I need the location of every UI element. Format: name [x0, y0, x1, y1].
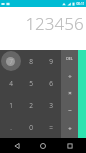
button[interactable]: 1 — [0, 94, 21, 116]
staticText: 1 — [9, 101, 13, 110]
button[interactable]: 2 — [21, 94, 41, 116]
button[interactable]: 6 — [41, 72, 61, 94]
staticText: 7 — [9, 57, 13, 66]
staticText: 8 — [29, 57, 33, 66]
button[interactable]: 0 — [21, 116, 41, 138]
staticText: − — [68, 107, 72, 115]
button[interactable]: 4 — [0, 72, 21, 94]
staticText: 2 — [29, 101, 33, 110]
staticText: + — [68, 125, 72, 133]
button[interactable]: DEL — [61, 50, 78, 67]
staticText: 00:11 — [76, 2, 85, 6]
staticText: . — [10, 123, 12, 132]
button[interactable]: 3 — [41, 94, 61, 116]
staticText: ÷ — [68, 72, 72, 80]
button[interactable]: = — [41, 116, 61, 138]
staticText: 6 — [49, 79, 53, 88]
staticText: × — [68, 89, 72, 97]
button[interactable]: 8 — [21, 50, 41, 72]
staticText: 123456 — [25, 12, 84, 35]
button[interactable]: Home — [33, 138, 53, 153]
button[interactable]: − — [61, 102, 78, 120]
staticText: 3 — [49, 101, 53, 110]
button[interactable]: × — [61, 84, 78, 102]
button[interactable]: ÷ — [61, 67, 78, 84]
button[interactable]: Recent apps — [60, 138, 80, 153]
button[interactable]: + — [61, 120, 78, 138]
button[interactable]: 5 — [21, 72, 41, 94]
staticText: 9 — [49, 57, 53, 66]
staticText: 5 — [29, 79, 33, 88]
staticText: DEL — [66, 56, 73, 61]
button[interactable]: Back — [7, 138, 27, 153]
button[interactable]: 7 — [0, 50, 21, 72]
staticText: 0 — [29, 123, 33, 132]
button[interactable]: 9 — [41, 50, 61, 72]
staticText: = — [49, 123, 53, 132]
staticText: 4 — [9, 79, 13, 88]
